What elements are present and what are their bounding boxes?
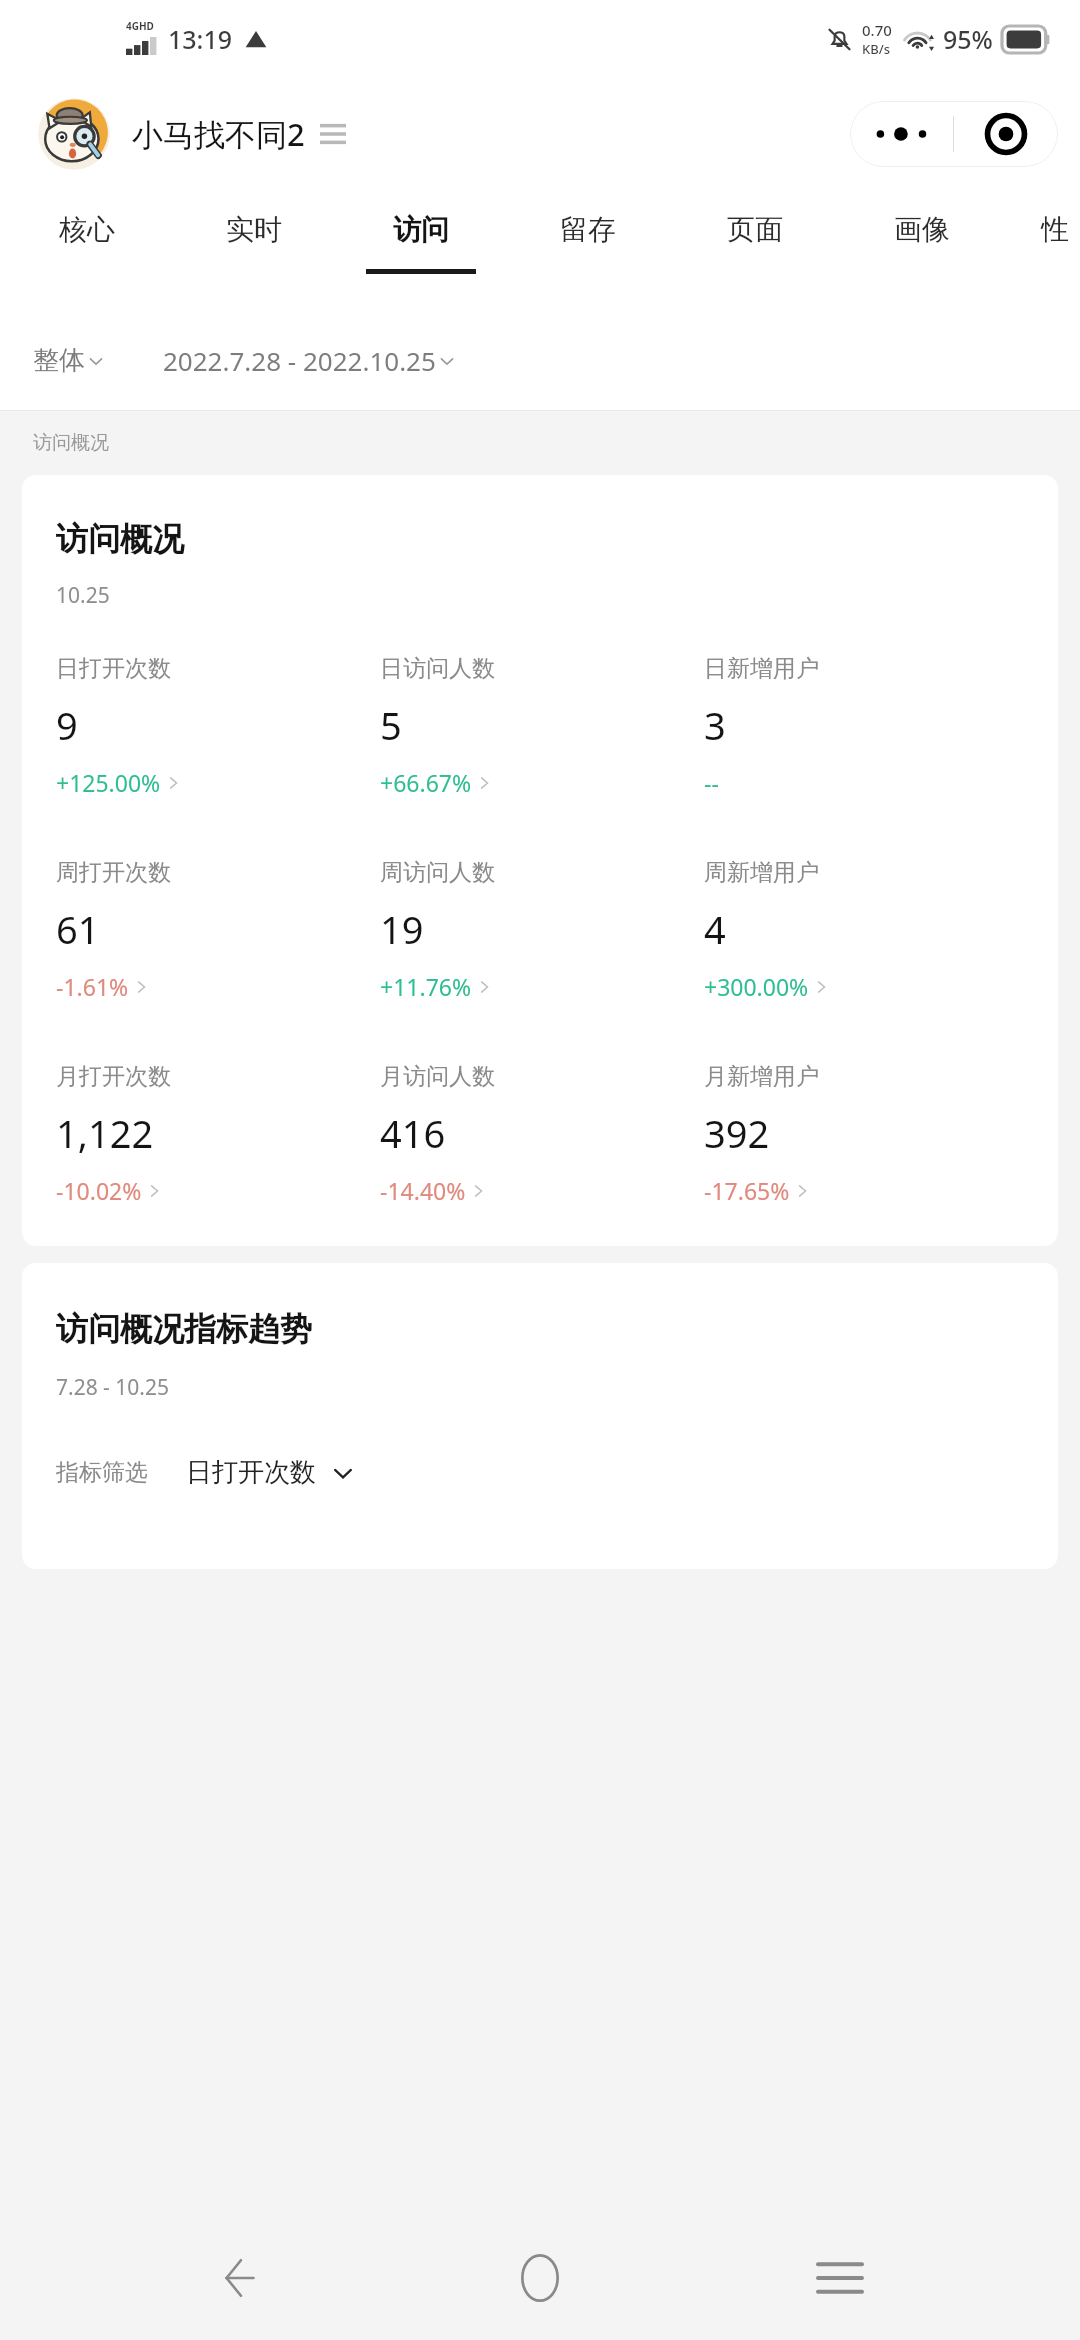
button[interactable]: 月访问人数 <box>380 1062 704 1206</box>
staticText: 416 <box>380 1107 446 1159</box>
button[interactable]: App avatar <box>38 98 110 170</box>
staticText: 核心 <box>59 212 115 247</box>
staticText: +66.67% <box>380 767 472 798</box>
button[interactable]: 访问 <box>362 190 529 310</box>
staticText: 小马找不同2 <box>132 113 305 155</box>
staticText: 月新增用户 <box>704 1062 819 1091</box>
staticText: 留存 <box>560 212 616 247</box>
staticText: 性 <box>1041 212 1069 247</box>
button[interactable]: 性 <box>1030 190 1080 310</box>
staticText: 实时 <box>226 212 282 247</box>
staticText: 日访问人数 <box>380 654 495 683</box>
staticText: 访问 <box>393 212 449 247</box>
button[interactable]: 月打开次数 <box>56 1062 380 1206</box>
staticText: 访问概况 <box>56 519 184 559</box>
button[interactable]: 日新增用户 <box>704 654 1028 798</box>
button[interactable]: Recent apps <box>780 2218 900 2338</box>
button[interactable]: Back <box>180 2218 300 2338</box>
staticText: 61 <box>56 903 100 955</box>
staticText: 周打开次数 <box>56 858 171 887</box>
staticText: KB/s <box>862 40 891 58</box>
staticText: 月打开次数 <box>56 1062 171 1091</box>
staticText: -- <box>704 767 719 798</box>
button[interactable]: 日访问人数 <box>380 654 704 798</box>
staticText: 1,122 <box>56 1107 154 1159</box>
staticText: 7.28 - 10.25 <box>56 1373 170 1402</box>
staticText: +300.00% <box>704 971 809 1002</box>
staticText: 4 <box>704 903 726 955</box>
staticText: 画像 <box>894 212 950 247</box>
staticText: 页面 <box>727 212 783 247</box>
staticText: 19 <box>380 903 424 955</box>
staticText: 2022.7.28 - 2022.10.25 <box>163 343 436 378</box>
button[interactable]: 月新增用户 <box>704 1062 1028 1206</box>
button[interactable]: 画像 <box>863 190 1030 310</box>
button[interactable]: 周访问人数 <box>380 858 704 1002</box>
staticText: 日打开次数 <box>186 1456 316 1489</box>
staticText: -17.65% <box>704 1175 790 1206</box>
button[interactable]: 实时 <box>195 190 362 310</box>
staticText: 日新增用户 <box>704 654 819 683</box>
staticText: 9 <box>56 699 78 751</box>
button[interactable]: More options <box>850 101 953 167</box>
staticText: 3 <box>704 699 726 751</box>
staticText: 周新增用户 <box>704 858 819 887</box>
staticText: +11.76% <box>380 971 472 1002</box>
button[interactable]: 周打开次数 <box>56 858 380 1002</box>
button[interactable]: 日打开次数 <box>56 654 380 798</box>
button[interactable]: 周新增用户 <box>704 858 1028 1002</box>
staticText: 指标筛选 <box>56 1458 148 1487</box>
staticText: 日打开次数 <box>56 654 171 683</box>
button[interactable]: 整体 <box>33 344 103 377</box>
staticText: -10.02% <box>56 1175 142 1206</box>
staticText: 0.70 <box>862 20 892 40</box>
staticText: 95% <box>943 22 993 56</box>
button[interactable]: 页面 <box>696 190 863 310</box>
staticText: 月访问人数 <box>380 1062 495 1091</box>
staticText: +125.00% <box>56 767 161 798</box>
button[interactable]: Close mini program <box>954 101 1058 167</box>
staticText: 10.25 <box>56 581 110 610</box>
staticText: 访问概况指标趋势 <box>56 1309 312 1349</box>
staticText: -14.40% <box>380 1175 466 1206</box>
button[interactable]: 留存 <box>529 190 696 310</box>
staticText: 13:19 <box>168 22 233 56</box>
staticText: 5 <box>380 699 402 751</box>
staticText: 392 <box>704 1107 770 1159</box>
button[interactable]: 2022.7.28 - 2022.10.25 <box>163 343 454 378</box>
staticText: 访问概况 <box>33 431 109 455</box>
button[interactable]: Menu <box>320 123 346 145</box>
staticText: 周访问人数 <box>380 858 495 887</box>
button[interactable]: Home <box>480 2218 600 2338</box>
button[interactable]: 核心 <box>28 190 195 310</box>
staticText: -1.61% <box>56 971 129 1002</box>
button[interactable]: 日打开次数 <box>186 1456 354 1489</box>
staticText: 4GHD <box>126 19 154 33</box>
staticText: 整体 <box>33 344 85 377</box>
